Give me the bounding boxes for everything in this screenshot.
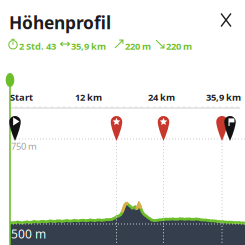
staticText: 35,9 km <box>71 40 106 52</box>
staticText: 500 m <box>11 226 46 242</box>
staticText: Höhenprofil <box>9 11 111 34</box>
staticText: 750 m <box>11 140 37 152</box>
button[interactable]: Close <box>214 8 238 32</box>
staticText: 35,9 km <box>206 91 241 103</box>
staticText: 220 m <box>166 40 192 52</box>
staticText: 2 Std. 43 <box>19 40 56 52</box>
staticText: 12 km <box>75 91 102 103</box>
staticText: 24 km <box>148 91 175 103</box>
staticText: 220 m <box>125 40 151 52</box>
staticText: Start <box>10 91 33 103</box>
